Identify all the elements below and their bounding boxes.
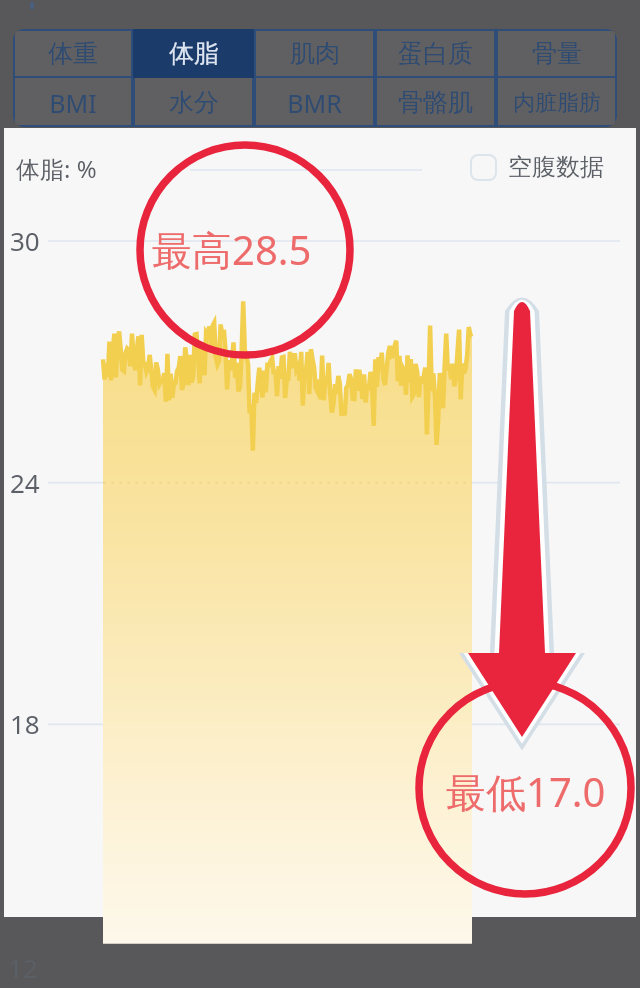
button[interactable]: 空腹数据 复选框	[470, 152, 604, 182]
button[interactable]: 内脏脂肪	[496, 78, 617, 127]
button[interactable]: 骨量	[496, 29, 617, 78]
button[interactable]: 肌肉	[254, 29, 375, 78]
staticText: 肌肉	[290, 38, 340, 69]
staticText: 空腹数据	[508, 152, 604, 182]
staticText: 12	[8, 950, 38, 985]
button[interactable]: BMR	[254, 78, 375, 127]
staticText: 水分	[169, 87, 219, 118]
button[interactable]: BMI	[13, 78, 133, 127]
button[interactable]: 骨骼肌	[375, 78, 496, 127]
staticText: BMR	[287, 86, 342, 120]
button[interactable]: 蛋白质	[375, 29, 496, 78]
button[interactable]: 体重	[13, 29, 133, 78]
staticText: 内脏脂肪	[513, 89, 601, 117]
button[interactable]: 水分	[133, 78, 254, 127]
button[interactable]: 体脂	[133, 29, 254, 78]
other: 空腹数据 复选框	[470, 154, 497, 181]
staticText: BMI	[49, 86, 97, 120]
staticText: 18	[10, 706, 40, 741]
staticText: 骨量	[532, 38, 582, 69]
staticText: 24	[10, 465, 40, 500]
staticText: 最低17.0	[446, 764, 606, 819]
staticText: 体脂: %	[16, 152, 97, 185]
staticText: 最高28.5	[152, 222, 312, 277]
staticText: 骨骼肌	[398, 87, 473, 118]
staticText: 30	[10, 223, 40, 258]
staticText: 体重	[48, 38, 98, 69]
staticText: 体脂	[169, 38, 219, 69]
staticText: 蛋白质	[398, 38, 473, 69]
